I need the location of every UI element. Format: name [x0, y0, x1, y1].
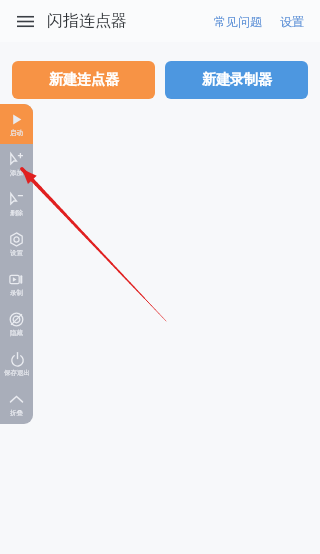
button[interactable]: Menu	[12, 8, 38, 34]
button[interactable]: 保存退出	[0, 344, 33, 384]
button[interactable]: 折叠	[0, 384, 33, 424]
staticText: 启动	[10, 129, 23, 137]
button[interactable]: 添加	[0, 144, 33, 184]
staticText: 闪指连点器	[47, 11, 127, 31]
staticText: 添加	[10, 169, 23, 177]
button[interactable]: 隐藏	[0, 304, 33, 344]
staticText: 隐藏	[10, 329, 23, 337]
staticText: 常见问题	[214, 14, 262, 29]
staticText: 新建录制器	[202, 71, 272, 89]
staticText: 折叠	[10, 409, 23, 417]
button[interactable]: 新建连点器	[12, 61, 155, 99]
button[interactable]: 删除	[0, 184, 33, 224]
staticText: 设置	[10, 249, 23, 257]
staticText: 录制	[10, 289, 23, 297]
button[interactable]: 设置	[276, 8, 308, 35]
staticText: 新建连点器	[49, 71, 119, 89]
staticText: 保存退出	[4, 369, 30, 377]
button[interactable]: 新建录制器	[165, 61, 308, 99]
staticText: 设置	[280, 14, 304, 29]
button[interactable]: 录制	[0, 264, 33, 304]
button[interactable]: 启动	[0, 104, 33, 144]
button[interactable]: 常见问题	[210, 8, 266, 35]
staticText: 删除	[10, 209, 23, 217]
button[interactable]: 设置	[0, 224, 33, 264]
